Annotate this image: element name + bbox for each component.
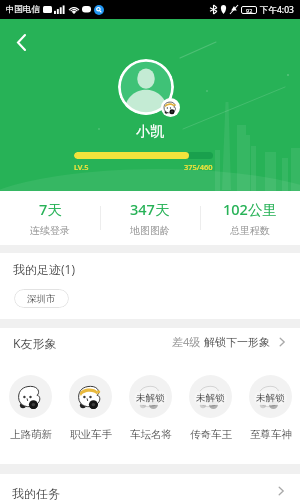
button[interactable]: 职业车手 [69,375,112,441]
staticText: 总里程数 [230,224,270,237]
button[interactable]: 上路萌新 [9,375,52,441]
staticText: LV.5 [74,162,89,172]
staticText: K友形象 [13,335,57,351]
button[interactable]: 102公里 [200,191,300,245]
button[interactable]: 未解锁 [189,375,232,441]
staticText: 小凯 [136,123,164,141]
staticText: 我的任务 [12,486,60,500]
button[interactable]: 347天 [100,191,200,245]
button[interactable]: 未解锁 [129,375,172,441]
staticText: 102公里 [223,199,277,219]
button[interactable]: 未解锁 [249,375,292,441]
staticText: 差4级 [172,334,204,349]
button[interactable]: 深圳市 [14,289,69,308]
staticText: 至尊车神 [250,428,292,441]
button[interactable]: Back [4,25,38,59]
staticText: 深圳市 [27,293,56,305]
staticText: 7天 [39,199,62,219]
staticText: 375/460 [184,162,213,172]
staticText: 下午4:03 [260,4,294,16]
staticText: 连续登录 [30,224,70,237]
button[interactable]: 7天 [0,191,100,245]
button[interactable]: 我的任务 [0,474,300,500]
staticText: 92 [246,7,253,14]
button[interactable]: Profile photo [118,59,174,115]
staticText: 传奇车王 [190,428,232,441]
staticText: 347天 [130,199,170,219]
staticText: 解锁下一形象 [204,335,270,349]
staticText: 车坛名将 [130,428,172,441]
button[interactable]: 差4级 [172,334,287,349]
staticText: 未解锁 [136,392,165,404]
staticText: 中国电信 [6,4,40,15]
staticText: 我的足迹(1) [13,261,76,277]
staticText: 未解锁 [256,392,285,404]
staticText: 上路萌新 [10,428,52,441]
staticText: 地图图龄 [130,224,170,237]
staticText: 未解锁 [196,392,225,404]
staticText: 职业车手 [70,428,112,441]
